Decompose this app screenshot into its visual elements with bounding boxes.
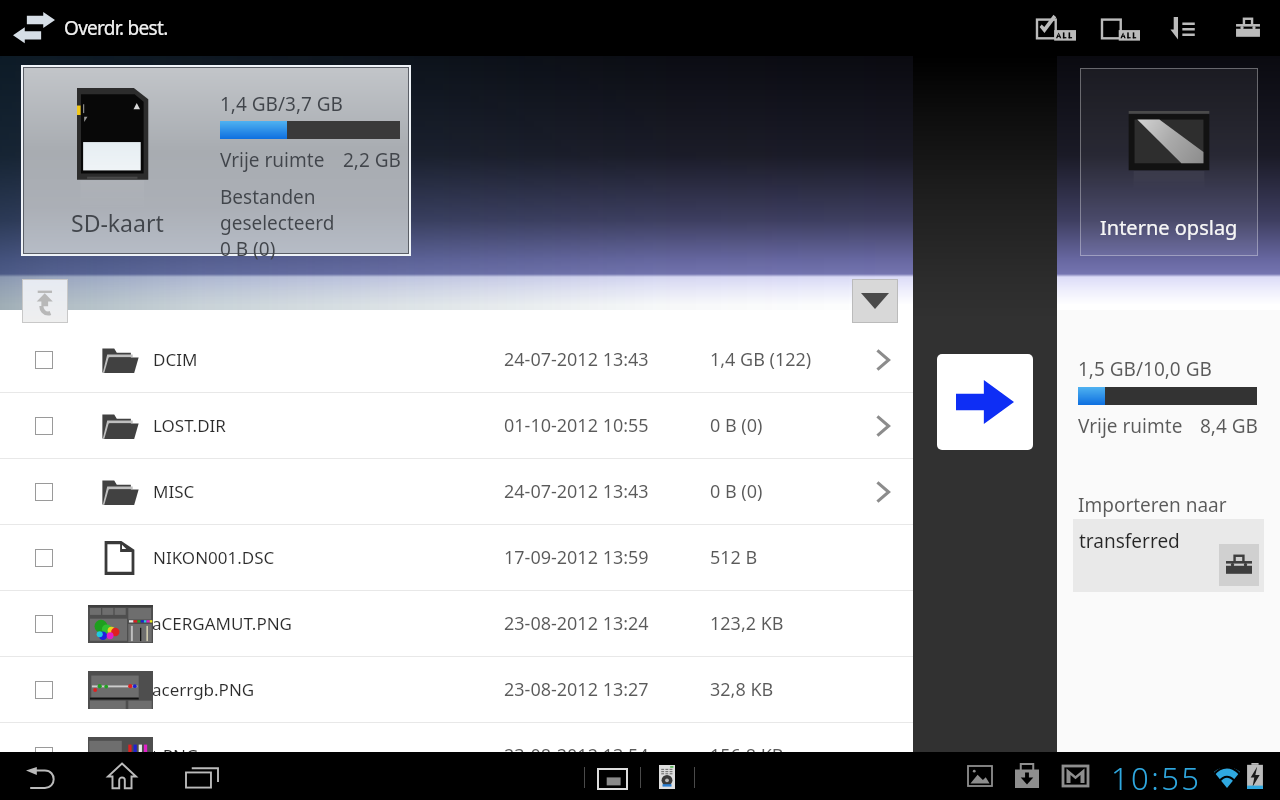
staticText: Vrije ruimte xyxy=(1078,413,1183,439)
button[interactable]: Select DCIM xyxy=(35,351,53,369)
staticText: DCIM xyxy=(153,348,198,371)
staticText: 1,4 GB/3,7 GB xyxy=(220,91,343,117)
staticText: NIKON001.DSC xyxy=(153,546,275,569)
staticText: SD-kaart xyxy=(71,207,164,238)
button[interactable]: transferred xyxy=(1073,519,1264,592)
button[interactable]: Deselect all xyxy=(1092,6,1150,50)
staticText: t.PNG xyxy=(152,744,199,767)
staticText: Bestanden geselecteerd 0 B (0) xyxy=(220,184,335,262)
staticText: 1,4 GB (122) xyxy=(710,347,812,372)
button[interactable]: SD-kaart xyxy=(24,68,408,253)
button[interactable]: Select acerrgb.PNG xyxy=(0,657,913,722)
button[interactable]: Select t.PNG xyxy=(35,747,53,765)
staticText: 2,2 GB xyxy=(343,147,401,173)
button[interactable]: Interne opslag xyxy=(1080,68,1258,256)
button[interactable]: Sort xyxy=(1161,6,1208,50)
button[interactable]: Back xyxy=(16,754,66,798)
button[interactable]: Tools xyxy=(1225,6,1271,50)
button[interactable]: Home xyxy=(98,754,146,798)
staticText: LOST.DIR xyxy=(153,414,226,437)
button[interactable]: Select t.PNG xyxy=(0,723,913,788)
staticText: 24-07-2012 13:43 xyxy=(504,347,649,372)
button[interactable]: Transfer xyxy=(937,354,1033,450)
button[interactable]: Mail xyxy=(1053,754,1098,798)
staticText: 0 B (0) xyxy=(710,479,763,504)
button[interactable]: Select MISC xyxy=(35,483,53,501)
staticText: transferred xyxy=(1079,528,1180,554)
button[interactable]: Select MISC xyxy=(0,459,913,524)
button[interactable]: Select aCERGAMUT.PNG xyxy=(35,615,53,633)
button[interactable]: Up one level xyxy=(22,279,68,323)
button[interactable]: Select LOST.DIR xyxy=(35,417,53,435)
staticText: 17-09-2012 13:59 xyxy=(504,545,649,570)
button[interactable]: Select NIKON001.DSC xyxy=(35,549,53,567)
staticText: Interne opslag xyxy=(1100,214,1238,241)
staticText: 156,8 KB xyxy=(710,743,784,768)
button[interactable]: Screen mirror xyxy=(588,754,637,798)
button[interactable]: Recents xyxy=(176,754,228,798)
staticText: 23-08-2012 13:54 xyxy=(504,743,649,768)
button[interactable]: Select all xyxy=(1027,6,1086,50)
button[interactable]: Transfer app xyxy=(10,8,58,48)
button[interactable]: Remote xyxy=(649,754,685,798)
staticText: 23-08-2012 13:24 xyxy=(504,611,649,636)
staticText: Importeren naar xyxy=(1078,492,1227,518)
staticText: 0 B (0) xyxy=(710,413,763,438)
button[interactable]: Download xyxy=(1005,754,1049,798)
button[interactable]: Screenshot xyxy=(958,754,1002,798)
staticText: 1,5 GB/10,0 GB xyxy=(1078,356,1212,382)
button[interactable]: Select NIKON001.DSC xyxy=(0,525,913,590)
staticText: Overdr. best. xyxy=(64,15,168,41)
button[interactable]: Select aCERGAMUT.PNG xyxy=(0,591,913,656)
staticText: acerrgb.PNG xyxy=(152,678,255,701)
button[interactable]: Select acerrgb.PNG xyxy=(35,681,53,699)
button[interactable]: Select DCIM xyxy=(0,327,913,392)
staticText: Vrije ruimte xyxy=(220,147,325,173)
staticText: 512 B xyxy=(710,545,758,570)
staticText: 8,4 GB xyxy=(1200,413,1258,439)
button[interactable]: More options xyxy=(852,279,898,323)
staticText: 01-10-2012 10:55 xyxy=(504,413,649,438)
staticText: 32,8 KB xyxy=(710,677,774,702)
staticText: 23-08-2012 13:27 xyxy=(504,677,649,702)
staticText: 123,2 KB xyxy=(710,611,784,636)
staticText: 10:55 xyxy=(1111,757,1202,799)
button[interactable]: Select LOST.DIR xyxy=(0,393,913,458)
staticText: aCERGAMUT.PNG xyxy=(152,612,292,635)
staticText: 24-07-2012 13:43 xyxy=(504,479,649,504)
staticText: MISC xyxy=(153,480,195,503)
